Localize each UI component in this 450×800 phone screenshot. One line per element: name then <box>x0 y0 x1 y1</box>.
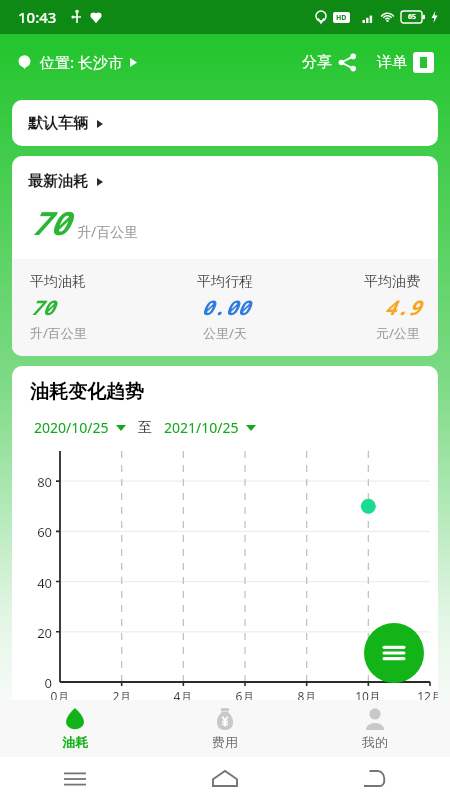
staticText: 12月 <box>416 688 438 704</box>
staticText: 4月 <box>169 688 197 704</box>
staticText: 升/百公里 <box>30 324 87 342</box>
staticText: 60 <box>26 523 52 541</box>
button[interactable]: 我的 <box>300 700 450 757</box>
staticText: 公里/天 <box>203 324 247 342</box>
button[interactable]: 2020/10/25 <box>32 416 128 439</box>
staticText: 10月 <box>354 688 382 704</box>
staticText: 4.9 <box>384 294 420 321</box>
staticText: 位置: 长沙市 <box>40 52 123 72</box>
staticText: 40 <box>26 574 52 592</box>
button[interactable]: 2021/10/25 <box>162 416 258 439</box>
staticText: 2021/10/25 <box>164 418 239 437</box>
button[interactable]: Menu <box>364 623 424 683</box>
button[interactable]: 油耗 <box>0 700 150 757</box>
staticText: 费用 <box>212 734 238 750</box>
button[interactable]: 费用 <box>150 700 300 757</box>
staticText: HD <box>336 13 347 23</box>
staticText: 2020/10/25 <box>34 418 109 437</box>
staticText: 平均油费 <box>364 273 420 291</box>
staticText: 元/公里 <box>376 324 420 342</box>
staticText: 油耗变化趋势 <box>30 380 144 404</box>
staticText: 8月 <box>293 688 321 704</box>
button[interactable]: Back <box>300 757 450 800</box>
staticText: 70 <box>30 201 69 245</box>
button[interactable]: 位置: 长沙市 <box>14 48 141 76</box>
button[interactable]: 最新油耗 <box>12 156 438 191</box>
staticText: 0月 <box>46 688 74 704</box>
staticText: 2月 <box>108 688 136 704</box>
staticText: 6月 <box>231 688 259 704</box>
staticText: 80 <box>26 473 52 491</box>
staticText: 默认车辆 <box>28 114 88 133</box>
staticText: 70 <box>30 294 54 321</box>
staticText: 油耗 <box>62 734 88 750</box>
button[interactable]: Recents <box>0 757 150 800</box>
staticText: 0.00 <box>201 294 249 321</box>
staticText: 至 <box>138 419 152 437</box>
staticText: 0 <box>26 674 52 692</box>
staticText: 详单 <box>377 53 407 72</box>
button[interactable]: 默认车辆 <box>12 100 438 146</box>
staticText: 65 <box>408 12 417 22</box>
button[interactable]: 详单 <box>373 48 438 77</box>
staticText: 平均行程 <box>197 273 253 291</box>
staticText: 我的 <box>362 734 388 750</box>
staticText: 升/百公里 <box>77 222 139 241</box>
staticText: 最新油耗 <box>28 172 88 191</box>
staticText: 10:43 <box>18 7 57 27</box>
staticText: 分享 <box>302 53 332 72</box>
staticText: 20 <box>26 624 52 642</box>
staticText: 平均油耗 <box>30 273 86 291</box>
button[interactable]: 分享 <box>298 49 361 76</box>
button[interactable]: Home <box>150 757 300 800</box>
